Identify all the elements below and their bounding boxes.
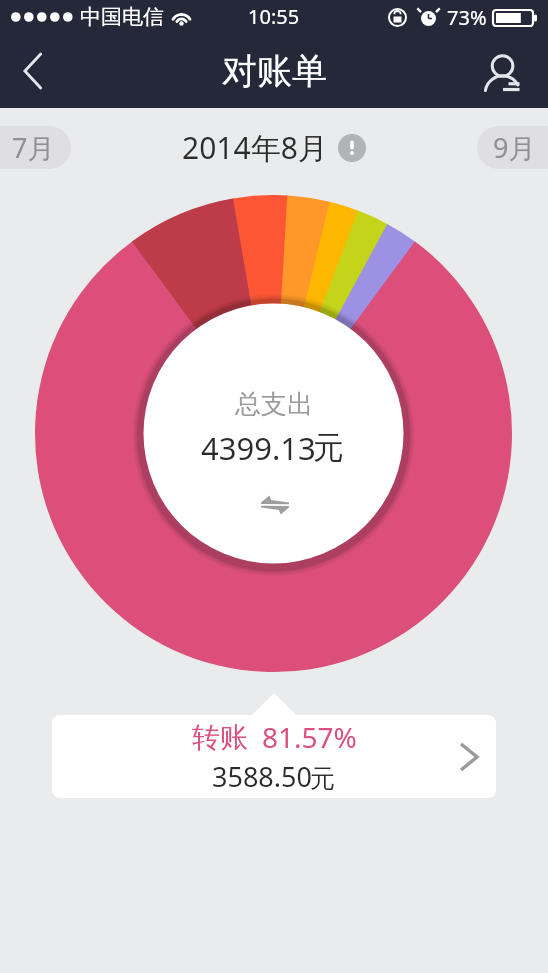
- button[interactable]: Back: [0, 34, 62, 108]
- button[interactable]: 9月: [477, 126, 548, 169]
- button[interactable]: Switch view: [250, 480, 299, 529]
- staticText: 7月: [12, 129, 55, 166]
- staticText: 元: [310, 763, 335, 794]
- staticText: 中国电信: [80, 4, 164, 30]
- staticText: 81.57%: [262, 718, 357, 756]
- button[interactable]: Contacts: [470, 34, 548, 108]
- button[interactable]: 转账: [52, 715, 496, 798]
- staticText: 总支出: [235, 388, 313, 421]
- staticText: 9月: [493, 129, 536, 166]
- staticText: 3588.50: [212, 758, 312, 795]
- button[interactable]: 7月: [0, 126, 71, 169]
- staticText: 对账单: [222, 49, 327, 93]
- staticText: 元: [313, 428, 344, 467]
- staticText: 10:55: [248, 3, 300, 30]
- button[interactable]: 2014年8月: [182, 127, 366, 168]
- staticText: 4399.13: [201, 427, 316, 469]
- staticText: 2014年8月: [182, 127, 328, 168]
- staticText: 转账: [192, 720, 248, 755]
- staticText: 73%: [447, 4, 487, 31]
